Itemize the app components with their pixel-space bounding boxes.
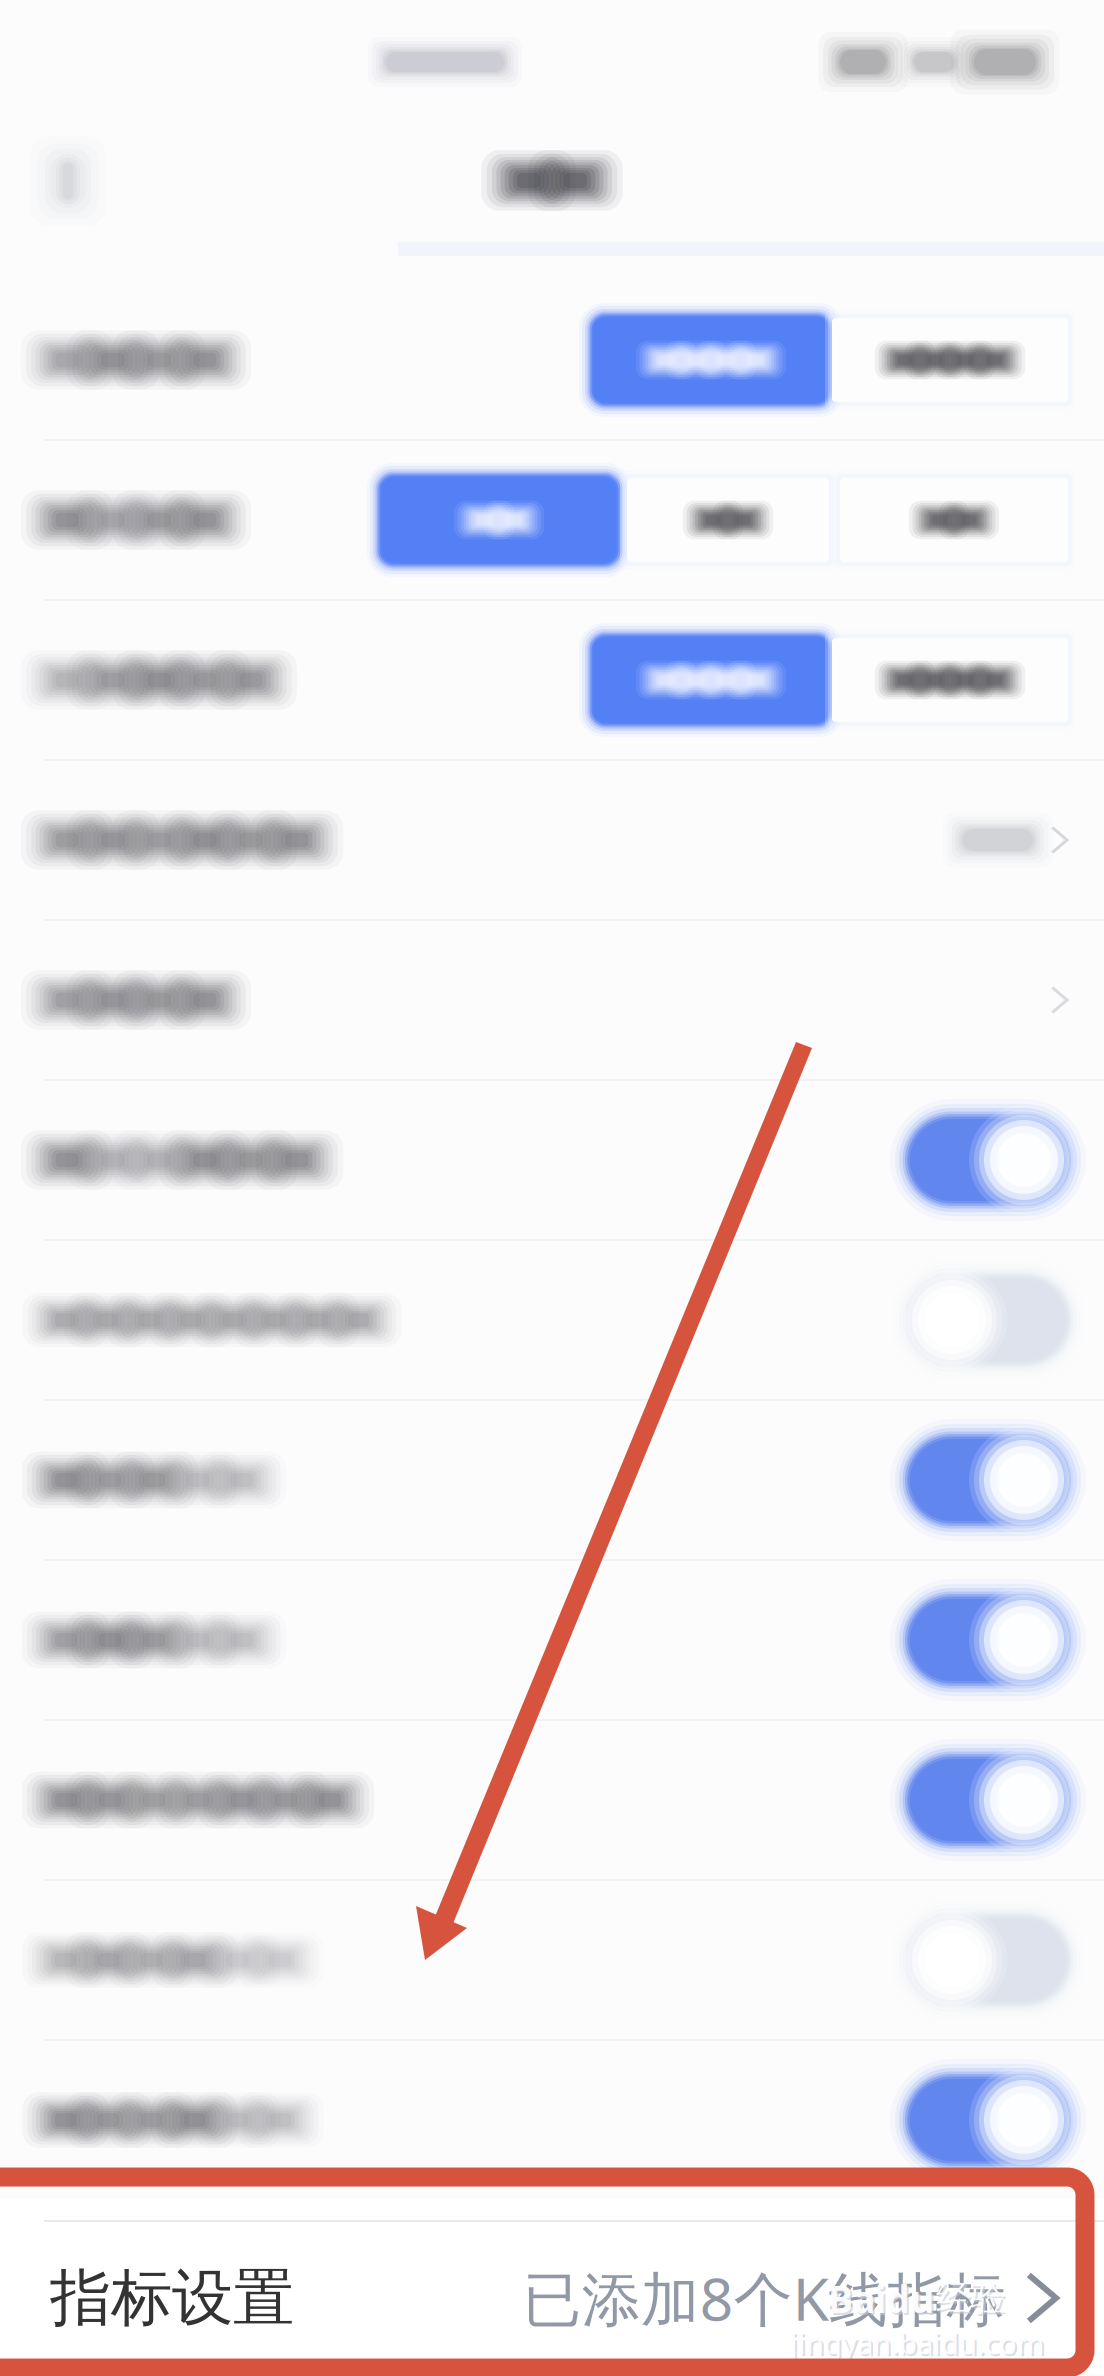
- button[interactable]: [0, 1721, 1104, 1879]
- button[interactable]: [0, 1081, 1104, 1239]
- button[interactable]: [0, 1401, 1104, 1559]
- button[interactable]: [0, 761, 1104, 919]
- button[interactable]: [0, 281, 1104, 439]
- staticText: Baidu: [828, 2274, 934, 2323]
- staticText: Baidu: [830, 2276, 936, 2325]
- staticText: 指标设置: [50, 2260, 294, 2336]
- button[interactable]: [0, 1561, 1104, 1719]
- button[interactable]: [0, 1881, 1104, 2039]
- button[interactable]: [0, 441, 1104, 599]
- staticText: 经验: [938, 2279, 1008, 2322]
- button[interactable]: [0, 921, 1104, 1079]
- button[interactable]: [0, 601, 1104, 759]
- button[interactable]: [0, 2041, 1104, 2199]
- staticText: jingyan.baidu.com: [792, 2325, 1046, 2364]
- button[interactable]: [0, 1241, 1104, 1399]
- button[interactable]: Back: [6, 122, 130, 240]
- staticText: jingyan.baidu.com: [790, 2323, 1044, 2362]
- staticText: 经验: [936, 2277, 1006, 2320]
- staticText: 已添加8个K线指标: [523, 2259, 1006, 2337]
- button[interactable]: 指标设置: [0, 2222, 1104, 2374]
